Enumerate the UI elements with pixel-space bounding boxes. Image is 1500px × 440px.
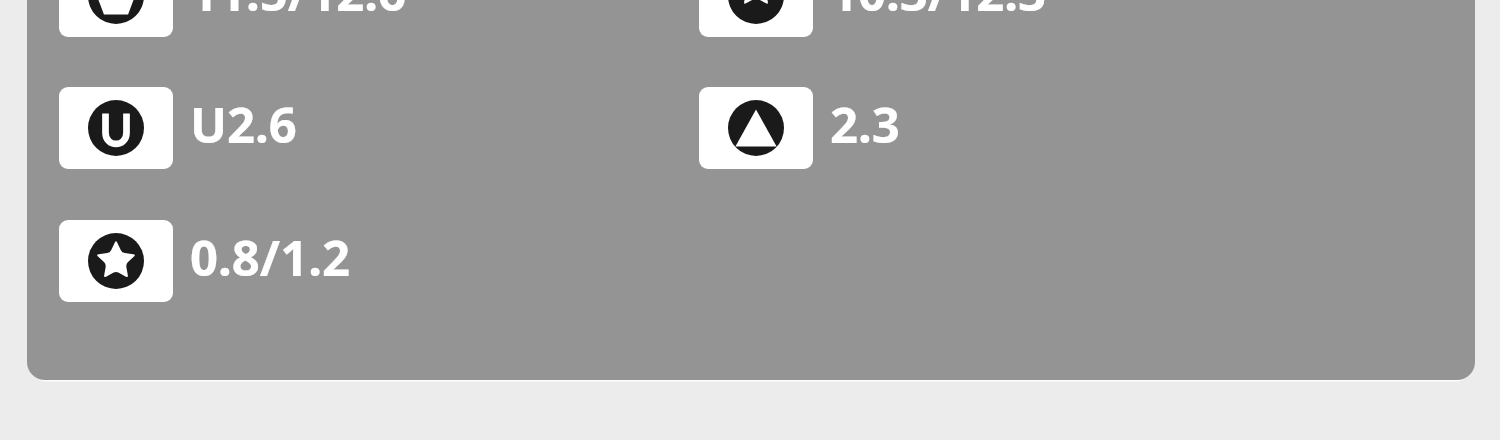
button[interactable]: Top speed	[699, 0, 1299, 37]
staticText: 11.5/12.6	[190, 0, 407, 26]
staticText: 2.3	[830, 91, 900, 158]
button[interactable]: Pace	[59, 0, 659, 37]
other: Rise	[699, 87, 813, 169]
other: Pace	[59, 0, 173, 37]
other: Top speed	[699, 0, 813, 37]
other: Under 2.6	[59, 87, 173, 169]
staticText: 0.8/1.2	[190, 224, 350, 291]
staticText: U2.6	[190, 91, 297, 158]
button[interactable]: Rating	[59, 220, 659, 302]
button[interactable]: Rise	[699, 87, 1299, 169]
other: Rating	[59, 220, 173, 302]
button[interactable]: Under 2.6	[59, 87, 659, 169]
staticText: 10.3/12.3	[830, 0, 1047, 26]
